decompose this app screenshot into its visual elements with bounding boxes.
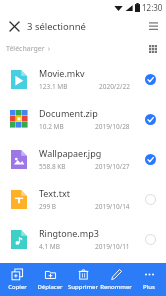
button[interactable]: Movie.mkv	[0, 59, 166, 99]
staticText: Document.zip	[39, 107, 98, 119]
staticText: 558.8 KB	[39, 162, 66, 171]
staticText: 12:30	[142, 2, 163, 13]
button[interactable]: Selected	[142, 151, 158, 167]
staticText: 2019/10/11	[95, 242, 130, 251]
staticText: Ringtone.mp3	[39, 227, 99, 239]
button[interactable]: Not selected	[142, 231, 158, 247]
button[interactable]: Close selection	[5, 17, 23, 35]
staticText: Déplacer	[37, 283, 63, 291]
button[interactable]: Not selected	[142, 191, 158, 207]
button[interactable]: Télécharger	[6, 44, 51, 54]
button[interactable]: Plus	[133, 263, 165, 296]
button[interactable]: Renommer	[100, 263, 132, 296]
staticText: Copier	[8, 283, 27, 291]
staticText: Movie.mkv	[39, 67, 85, 79]
staticText: Plus	[143, 283, 155, 291]
staticText: 2019/10/14	[95, 202, 130, 211]
staticText: 2019/10/27	[95, 162, 130, 171]
staticText: 2020/2/22	[99, 82, 130, 91]
staticText: Text.txt	[39, 187, 70, 199]
staticText: Wallpapaer.jpg	[39, 147, 102, 159]
button[interactable]: Document.zip	[0, 99, 166, 139]
button[interactable]: Grid view	[144, 40, 162, 58]
button[interactable]: Ringtone.mp3	[0, 219, 166, 259]
staticText: 123.1 MB	[39, 82, 68, 91]
staticText: 3 sélectionné	[27, 20, 86, 33]
staticText: 4.1 MB	[39, 242, 60, 251]
button[interactable]: Wallpapaer.jpg	[0, 139, 166, 179]
button[interactable]: Sort	[144, 17, 162, 35]
button[interactable]: Selected	[142, 111, 158, 127]
staticText: Renommer	[100, 283, 132, 291]
staticText: Télécharger	[6, 44, 45, 54]
button[interactable]: Supprimer	[67, 263, 99, 296]
button[interactable]: Selected	[142, 71, 158, 87]
staticText: Supprimer	[68, 283, 98, 291]
button[interactable]: Déplacer	[34, 263, 66, 296]
staticText: 299 B	[39, 202, 57, 211]
button[interactable]: Copier	[1, 263, 33, 296]
staticText: 10.2 MB	[39, 122, 64, 131]
button[interactable]: Text.txt	[0, 179, 166, 219]
staticText: 2019/10/28	[95, 122, 130, 131]
